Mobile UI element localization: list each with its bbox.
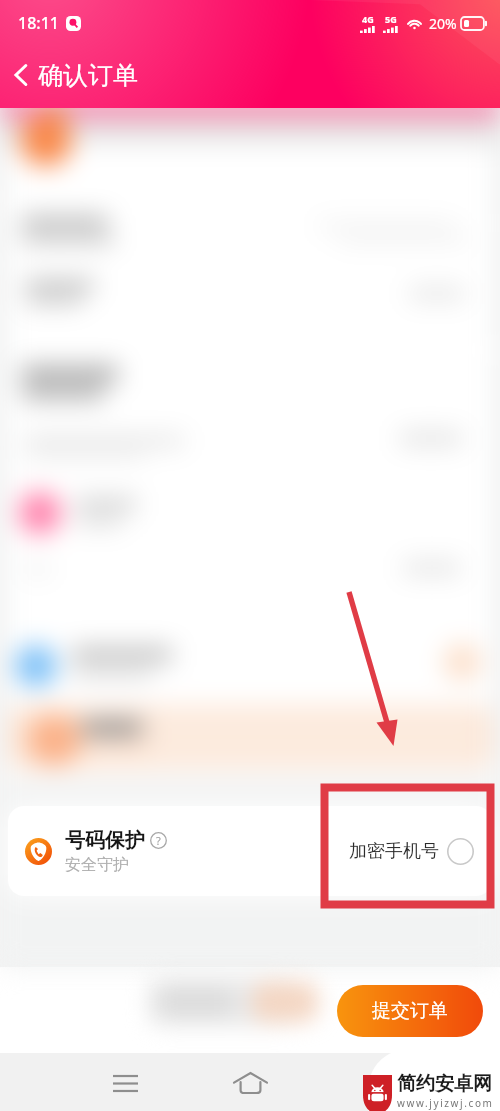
staticText: 20% bbox=[429, 14, 457, 33]
button[interactable]: 加密手机号 bbox=[349, 838, 474, 865]
button[interactable]: Home bbox=[229, 1062, 271, 1104]
staticText: www.jyizwj.com bbox=[397, 1096, 494, 1110]
staticText: 提交订单 bbox=[372, 999, 448, 1023]
staticText: 号码保护 bbox=[65, 828, 145, 853]
staticText: 安全守护 bbox=[65, 855, 129, 875]
staticText: 简约安卓网 bbox=[397, 1072, 492, 1096]
staticText: 18:11 bbox=[18, 12, 59, 34]
button[interactable]: Help bbox=[150, 832, 167, 849]
button[interactable]: Back bbox=[4, 58, 38, 92]
button[interactable]: 提交订单 bbox=[337, 985, 483, 1037]
staticText: 4G bbox=[362, 13, 374, 25]
staticText: 加密手机号 bbox=[349, 840, 439, 863]
staticText: 确认订单 bbox=[38, 60, 138, 91]
staticText: ? bbox=[156, 833, 161, 848]
button[interactable]: 号码保护 bbox=[8, 806, 492, 896]
button[interactable]: Recent apps bbox=[104, 1062, 146, 1104]
staticText: 5G bbox=[385, 13, 397, 25]
